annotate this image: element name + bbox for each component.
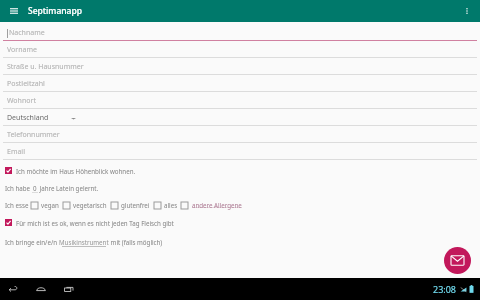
button[interactable]: Deutschland (3, 109, 477, 126)
button[interactable]: Home (34, 282, 48, 296)
staticText: Ich habe (5, 184, 32, 192)
button[interactable]: Checkbox (63, 202, 70, 209)
button[interactable]: Send email (444, 247, 471, 274)
staticText: Straße u. Hausnummer (7, 62, 84, 72)
button[interactable]: Ich habe (3, 182, 477, 194)
button[interactable]: Recent apps (62, 282, 76, 296)
button[interactable]: Email (3, 143, 477, 160)
staticText: Postleitzahl (7, 79, 45, 89)
button[interactable]: More options (460, 4, 474, 18)
button[interactable]: Checkbox (3, 165, 477, 176)
button[interactable]: Back (6, 282, 20, 296)
staticText: Jahre Latein gelernt. (38, 184, 99, 192)
button[interactable]: Checkbox (5, 167, 12, 174)
button[interactable]: Checkbox (31, 201, 61, 209)
staticText: Deutschland (7, 113, 49, 123)
button[interactable]: Checkbox (111, 202, 118, 209)
staticText: Für mich ist es ok, wenn es nicht jeden … (16, 219, 174, 227)
button[interactable]: Checkbox (3, 217, 477, 228)
button[interactable]: Telefonnummer (3, 126, 477, 143)
button[interactable]: Ich bringe ein/e/n (3, 236, 477, 248)
staticText: Ich esse (5, 201, 31, 209)
staticText: alles (164, 201, 179, 209)
button[interactable]: Checkbox (154, 201, 179, 209)
button[interactable]: Checkbox (181, 201, 242, 209)
staticText: Nachname (9, 28, 45, 38)
staticText: mit (falls möglich) (109, 238, 163, 246)
staticText: Musikinstrument (59, 238, 109, 246)
staticText: andere Allergene (192, 201, 242, 209)
button[interactable]: Checkbox (111, 201, 152, 209)
button[interactable]: Open navigation menu (8, 5, 20, 17)
button[interactable]: Nachname (3, 24, 477, 41)
staticText: Email (7, 147, 25, 157)
staticText: Ich möchte im Haus Höhenblick wohnen. (16, 167, 136, 175)
button[interactable]: Wohnort (3, 92, 477, 109)
button[interactable]: Checkbox (5, 219, 12, 226)
button[interactable]: Checkbox (154, 202, 161, 209)
staticText: 23:08 (433, 283, 457, 295)
button[interactable]: Straße u. Hausnummer (3, 58, 477, 75)
staticText: glutenfrei (121, 201, 152, 209)
button[interactable]: Checkbox (31, 202, 38, 209)
staticText: 0 (33, 184, 37, 192)
staticText: vegan (41, 201, 61, 209)
staticText: Wohnort (7, 96, 36, 106)
staticText: Vorname (7, 45, 37, 55)
button[interactable]: Vorname (3, 41, 477, 58)
button[interactable]: Checkbox (63, 201, 109, 209)
staticText: vegetarisch (73, 201, 109, 209)
staticText: Telefonnummer (7, 130, 60, 140)
button[interactable]: Checkbox (181, 202, 188, 209)
button[interactable]: Postleitzahl (3, 75, 477, 92)
staticText: Septimanapp (28, 5, 83, 17)
staticText: Ich bringe ein/e/n (5, 238, 59, 246)
